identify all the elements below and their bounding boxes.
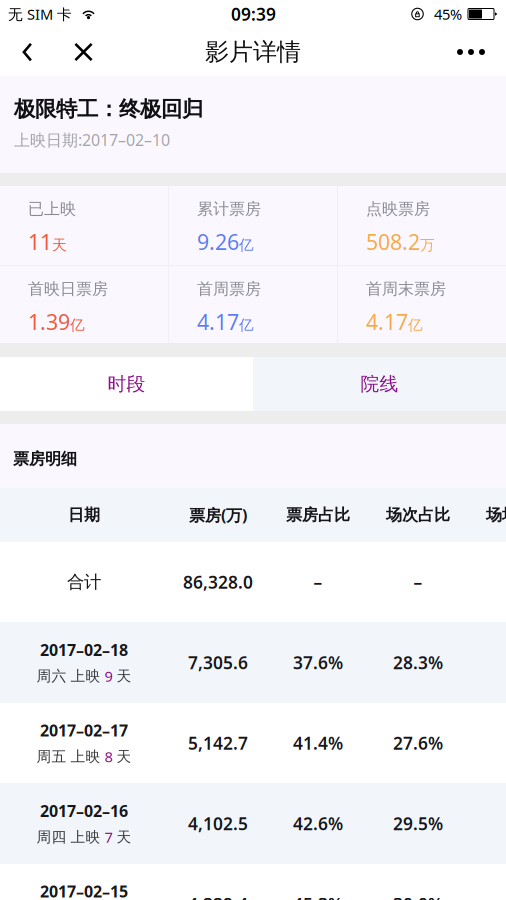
button[interactable]: 2017–02–16	[0, 783, 506, 864]
button[interactable]: 2017–02–15	[0, 864, 506, 900]
staticText: 45%	[434, 4, 462, 24]
staticText: 亿	[239, 316, 254, 334]
staticText: 累计票房	[197, 199, 261, 219]
staticText: 4.17	[197, 308, 239, 336]
staticText: 场均人次	[486, 505, 506, 525]
staticText: 29.5%	[393, 812, 443, 835]
staticText: 票房占比	[286, 505, 350, 525]
button[interactable]: 更多	[440, 28, 502, 76]
staticText: 点映票房	[366, 199, 430, 219]
button[interactable]: 2017–02–18	[0, 622, 506, 703]
button[interactable]: 时段	[0, 357, 253, 411]
staticText: 极限特工：终极回归	[14, 96, 203, 122]
staticText: 7,305.6	[188, 651, 248, 674]
staticText: 天	[116, 828, 131, 846]
staticText: 周四	[36, 828, 66, 846]
staticText: 上映日期:2017–02–10	[14, 129, 170, 150]
staticText: 周五	[36, 748, 66, 766]
staticText: 30.0%	[393, 892, 443, 900]
staticText: 日期	[68, 505, 100, 525]
staticText: 时段	[107, 372, 145, 395]
staticText: 42.6%	[293, 812, 343, 835]
staticText: 4,102.5	[188, 812, 248, 835]
staticText: 无 SIM 卡	[8, 4, 72, 24]
staticText: 天	[116, 748, 131, 766]
staticText: 508.2	[366, 228, 420, 256]
staticText: 院线	[360, 372, 398, 395]
button[interactable]: 关闭	[53, 28, 114, 76]
staticText: 9	[104, 666, 112, 686]
staticText: 2017–02–18	[40, 639, 128, 660]
staticText: 上映	[70, 667, 100, 685]
staticText: 2017–02–16	[40, 800, 128, 821]
button[interactable]: 2017–02–17	[0, 703, 506, 783]
staticText: 场次占比	[386, 505, 450, 525]
staticText: 首映日票房	[28, 279, 108, 299]
staticText: 影片详情	[205, 37, 301, 67]
staticText: 4.17	[366, 308, 408, 336]
staticText: 已上映	[28, 199, 76, 219]
staticText: 86,328.0	[183, 570, 253, 593]
staticText: 45.3%	[293, 892, 343, 900]
staticText: 27.6%	[393, 731, 443, 754]
staticText: 2017–02–15	[40, 881, 128, 900]
staticText: 7	[104, 827, 112, 847]
staticText: 亿	[239, 236, 254, 254]
staticText: 亿	[408, 316, 423, 334]
staticText: 9.26	[197, 228, 239, 256]
staticText: 1.39	[28, 308, 70, 336]
staticText: 上映	[70, 828, 100, 846]
staticText: 票房明细	[13, 449, 77, 469]
staticText: –	[313, 570, 322, 593]
staticText: 11	[28, 228, 52, 256]
staticText: 首周票房	[197, 279, 261, 299]
staticText: 4,229.4	[188, 892, 248, 900]
staticText: 亿	[70, 316, 85, 334]
staticText: 首周末票房	[366, 279, 446, 299]
staticText: 合计	[67, 571, 101, 593]
staticText: 41.4%	[293, 731, 343, 754]
staticText: 票房(万)	[189, 504, 247, 526]
staticText: –	[413, 570, 422, 593]
staticText: 2017–02–17	[40, 720, 128, 741]
staticText: 5,142.7	[188, 731, 248, 754]
staticText: 8	[104, 747, 112, 766]
staticText: 上映	[70, 748, 100, 766]
staticText: 天	[116, 667, 131, 685]
staticText: 天	[52, 236, 67, 254]
staticText: 37.6%	[293, 651, 343, 674]
staticText: 周六	[36, 667, 66, 685]
staticText: 09:39	[231, 2, 276, 25]
staticText: 万	[420, 236, 435, 254]
button[interactable]: 返回	[2, 28, 53, 76]
button[interactable]: 院线	[253, 357, 506, 411]
staticText: 28.3%	[393, 651, 443, 674]
